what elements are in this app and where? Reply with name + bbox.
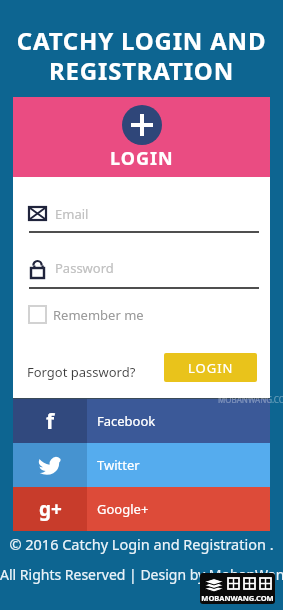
button[interactable]: Forgot password?: [27, 363, 136, 381]
staticText: Email: [55, 205, 89, 223]
staticText: MOBANWANG.COM: [200, 593, 275, 603]
staticText: Password: [55, 259, 114, 277]
staticText: Remember me: [53, 306, 144, 324]
staticText: f: [46, 407, 55, 436]
button[interactable]: LOGIN: [164, 353, 257, 382]
button[interactable]: Remember me: [28, 305, 144, 324]
button[interactable]: f: [13, 399, 270, 443]
staticText: LOGIN: [110, 146, 174, 171]
button[interactable]: [122, 105, 162, 145]
staticText: CATCHY LOGIN AND: [0, 24, 283, 57]
staticText: All Rights Reserved | Design by MobanWan…: [0, 565, 283, 584]
staticText: Twitter: [97, 456, 140, 474]
staticText: Facebook: [97, 412, 156, 430]
button[interactable]: g+: [13, 487, 270, 531]
staticText: LOGIN: [188, 359, 234, 377]
button[interactable]: Twitter: [13, 443, 270, 487]
staticText: REGISTRATION: [0, 54, 283, 87]
staticText: © 2016 Catchy Login and Registration .: [0, 534, 283, 554]
staticText: MOBANWANG.COM: [218, 394, 283, 405]
staticText: Google+: [97, 500, 149, 518]
staticText: g+: [39, 496, 62, 522]
